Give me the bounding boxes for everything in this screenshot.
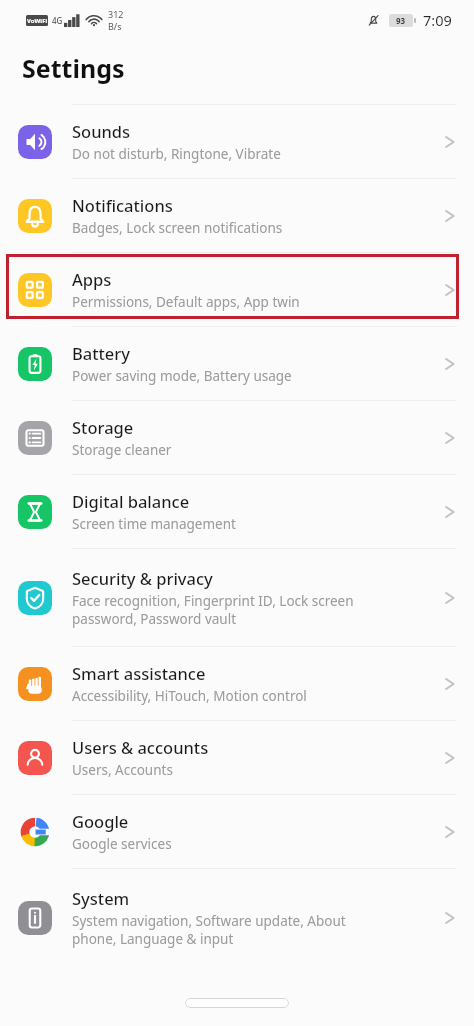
staticText: System (72, 887, 130, 909)
staticText: Do not disturb, Ringtone, Vibrate (72, 145, 281, 163)
staticText: Permissions, Default apps, App twin (72, 293, 300, 311)
staticText: Google (72, 810, 129, 832)
staticText: Badges, Lock screen notifications (72, 219, 283, 237)
other: Home gesture bar (185, 998, 289, 1008)
staticText: 312 (108, 8, 124, 20)
button[interactable]: Sounds (0, 105, 474, 178)
staticText: Sounds (72, 120, 131, 142)
staticText: Apps (72, 268, 112, 290)
staticText: Screen time management (72, 515, 236, 533)
staticText: Power saving mode, Battery usage (72, 367, 292, 385)
staticText: Smart assistance (72, 662, 206, 684)
staticText: Users, Accounts (72, 761, 173, 779)
button[interactable]: Smart assistance (0, 647, 474, 720)
staticText: Google services (72, 835, 172, 853)
staticText: Storage (72, 416, 134, 438)
button[interactable]: Digital balance (0, 475, 474, 548)
staticText: Security & privacy (72, 567, 213, 589)
staticText: 93 (396, 15, 406, 26)
staticText: Digital balance (72, 490, 190, 512)
button[interactable]: Google (0, 795, 474, 868)
staticText: System navigation, Software update, Abou… (72, 912, 346, 948)
staticText: Users & accounts (72, 736, 209, 758)
staticText: B/s (108, 20, 122, 32)
staticText: Accessibility, HiTouch, Motion control (72, 687, 307, 705)
staticText: 7:09 (423, 10, 452, 30)
button[interactable]: System (0, 869, 474, 966)
staticText: Storage cleaner (72, 441, 172, 459)
staticText: Settings (22, 51, 125, 85)
staticText: 4G (52, 15, 63, 26)
button[interactable]: Notifications (0, 179, 474, 252)
button[interactable]: Users & accounts (0, 721, 474, 794)
button[interactable]: Apps (0, 253, 474, 326)
staticText: Notifications (72, 194, 173, 216)
staticText: VoWiFi (27, 17, 48, 25)
button[interactable]: Security & privacy (0, 549, 474, 646)
button[interactable]: Battery (0, 327, 474, 400)
staticText: Face recognition, Fingerprint ID, Lock s… (72, 592, 354, 628)
button[interactable]: Storage (0, 401, 474, 474)
staticText: Battery (72, 342, 131, 364)
